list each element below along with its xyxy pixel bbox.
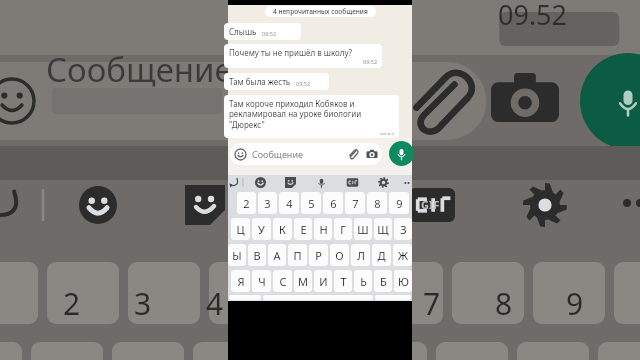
staticText: В — [253, 248, 261, 263]
staticText: Е — [300, 222, 307, 237]
button[interactable]: Voice input — [316, 177, 327, 188]
button[interactable]: Е — [294, 218, 312, 240]
staticText: 09:52 — [363, 58, 378, 65]
staticText: Ы — [232, 248, 242, 263]
button[interactable]: П — [288, 244, 307, 266]
staticText: Там была жесть — [229, 76, 291, 87]
staticText: 3 — [264, 196, 271, 211]
staticText: 6 — [330, 196, 337, 211]
staticText: 8 — [374, 196, 381, 211]
staticText: 2 — [243, 196, 250, 211]
staticText: И — [319, 274, 328, 289]
button[interactable]: Redo — [229, 177, 240, 188]
button[interactable]: Enter — [375, 295, 411, 300]
staticText: Ч — [258, 274, 266, 289]
staticText: Ц — [236, 222, 245, 237]
button[interactable]: 4 — [279, 192, 299, 214]
staticText: 09:52 — [262, 30, 277, 37]
button[interactable]: GIF — [347, 177, 358, 188]
staticText: Там короче приходил Кобяков и рекламиров… — [229, 98, 395, 131]
staticText: Ю — [398, 274, 409, 289]
staticText: 4 непрочитанных сообщения — [273, 7, 368, 16]
staticText: О — [335, 248, 344, 263]
button[interactable]: У — [252, 218, 271, 240]
button[interactable]: Слышь — [224, 23, 301, 40]
staticText: Ш — [357, 222, 369, 237]
button[interactable]: Symbols — [229, 295, 261, 300]
button[interactable]: Voice message — [389, 141, 414, 166]
staticText: Н — [319, 222, 328, 237]
staticText: 9 — [396, 196, 403, 211]
button[interactable]: 3 — [258, 192, 277, 214]
button[interactable]: Sticker — [285, 177, 296, 188]
button[interactable]: Ч — [252, 270, 271, 292]
staticText: 09.52 — [498, 0, 568, 33]
staticText: 2 — [63, 283, 81, 317]
button[interactable]: 8 — [367, 192, 387, 214]
button[interactable]: Д — [372, 244, 391, 266]
other: Emoji — [234, 148, 247, 161]
button[interactable]: Emoji — [255, 177, 266, 188]
staticText: 9 — [566, 283, 584, 317]
staticText: 4 — [286, 196, 293, 211]
button[interactable]: Там была жесть — [224, 73, 329, 90]
button[interactable]: 5 — [301, 192, 321, 214]
button[interactable]: А — [268, 244, 286, 266]
button[interactable]: 6 — [323, 192, 343, 214]
button[interactable]: Attach — [347, 148, 359, 160]
staticText: Д — [377, 248, 386, 263]
staticText: М — [298, 274, 308, 289]
button[interactable]: Ь — [354, 270, 372, 292]
button[interactable]: Р — [309, 244, 328, 266]
button[interactable]: С — [273, 270, 292, 292]
staticText: К — [279, 222, 286, 237]
button[interactable]: З — [394, 218, 412, 240]
staticText: П — [293, 248, 302, 263]
staticText: Б — [380, 274, 387, 289]
button[interactable]: 9 — [389, 192, 409, 214]
button[interactable]: И — [314, 270, 332, 292]
button[interactable]: В — [248, 244, 266, 266]
button[interactable]: Л — [351, 244, 370, 266]
button[interactable]: Ш — [354, 218, 372, 240]
staticText: Я — [237, 274, 245, 289]
button[interactable]: Я — [231, 270, 250, 292]
button[interactable]: М — [294, 270, 312, 292]
staticText: Ж — [398, 248, 408, 263]
button[interactable]: К — [273, 218, 292, 240]
staticText: 7 — [423, 283, 441, 317]
button[interactable]: 7 — [345, 192, 365, 214]
staticText: 4 — [206, 283, 224, 317]
button[interactable]: Camera — [366, 148, 378, 160]
button[interactable]: Щ — [374, 218, 392, 240]
staticText: У — [258, 222, 265, 237]
staticText: GIF — [421, 197, 440, 212]
button[interactable]: Почему ты не пришёл в школу? — [224, 44, 382, 68]
staticText: Л — [357, 248, 365, 263]
staticText: 09:52 — [380, 131, 395, 135]
staticText: Г — [340, 222, 346, 237]
button[interactable]: Settings — [378, 177, 389, 188]
button[interactable]: О — [330, 244, 349, 266]
staticText: 09:52 — [296, 80, 311, 87]
staticText: Р — [315, 248, 322, 263]
button[interactable]: Н — [314, 218, 332, 240]
button[interactable]: Emoji — [230, 143, 382, 165]
staticText: З — [400, 222, 407, 237]
button[interactable]: Ж — [393, 244, 412, 266]
button[interactable]: 2 — [237, 192, 256, 214]
button[interactable]: Ы — [228, 244, 246, 266]
button[interactable]: Б — [374, 270, 392, 292]
staticText: Щ — [377, 222, 389, 237]
button[interactable]: Г — [334, 218, 352, 240]
button[interactable]: Ц — [231, 218, 250, 240]
button[interactable]: Т — [334, 270, 352, 292]
staticText: Ь — [360, 274, 367, 289]
staticText: Почему ты не пришёл в школу? — [229, 47, 353, 58]
staticText: Сообщение — [252, 148, 303, 160]
staticText: 7 — [352, 196, 359, 211]
staticText: С — [279, 274, 287, 289]
button[interactable]: Ю — [394, 270, 412, 292]
button[interactable]: Там короче приходил Кобяков и рекламиров… — [224, 95, 399, 138]
